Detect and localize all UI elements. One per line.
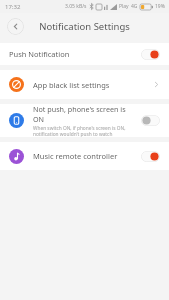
staticText: 19% — [155, 3, 165, 10]
staticText: Notification Settings — [39, 20, 130, 33]
button[interactable]: Back — [7, 18, 24, 35]
button[interactable]: Toggle on — [141, 151, 160, 162]
staticText: 4G — [131, 3, 138, 10]
button[interactable]: Not push, phone's screen is ON — [0, 104, 169, 137]
staticText: When switch ON, if phone's screen is ON,… — [33, 125, 137, 137]
button[interactable]: App black list settings — [0, 70, 169, 99]
staticText: App black list settings — [33, 80, 153, 90]
button[interactable]: Push Notification — [0, 43, 169, 65]
staticText: Not push, phone's screen is ON — [33, 104, 137, 124]
staticText: Music remote controller — [33, 151, 141, 161]
staticText: Play — [119, 3, 129, 10]
button[interactable]: Toggle on — [141, 49, 160, 60]
button[interactable]: Music remote controller — [0, 142, 169, 170]
staticText: 17:32 — [5, 3, 21, 11]
staticText: 3.05 kB/s — [65, 3, 87, 10]
button[interactable]: Toggle off — [141, 115, 160, 126]
staticText: Push Notification — [9, 49, 141, 59]
